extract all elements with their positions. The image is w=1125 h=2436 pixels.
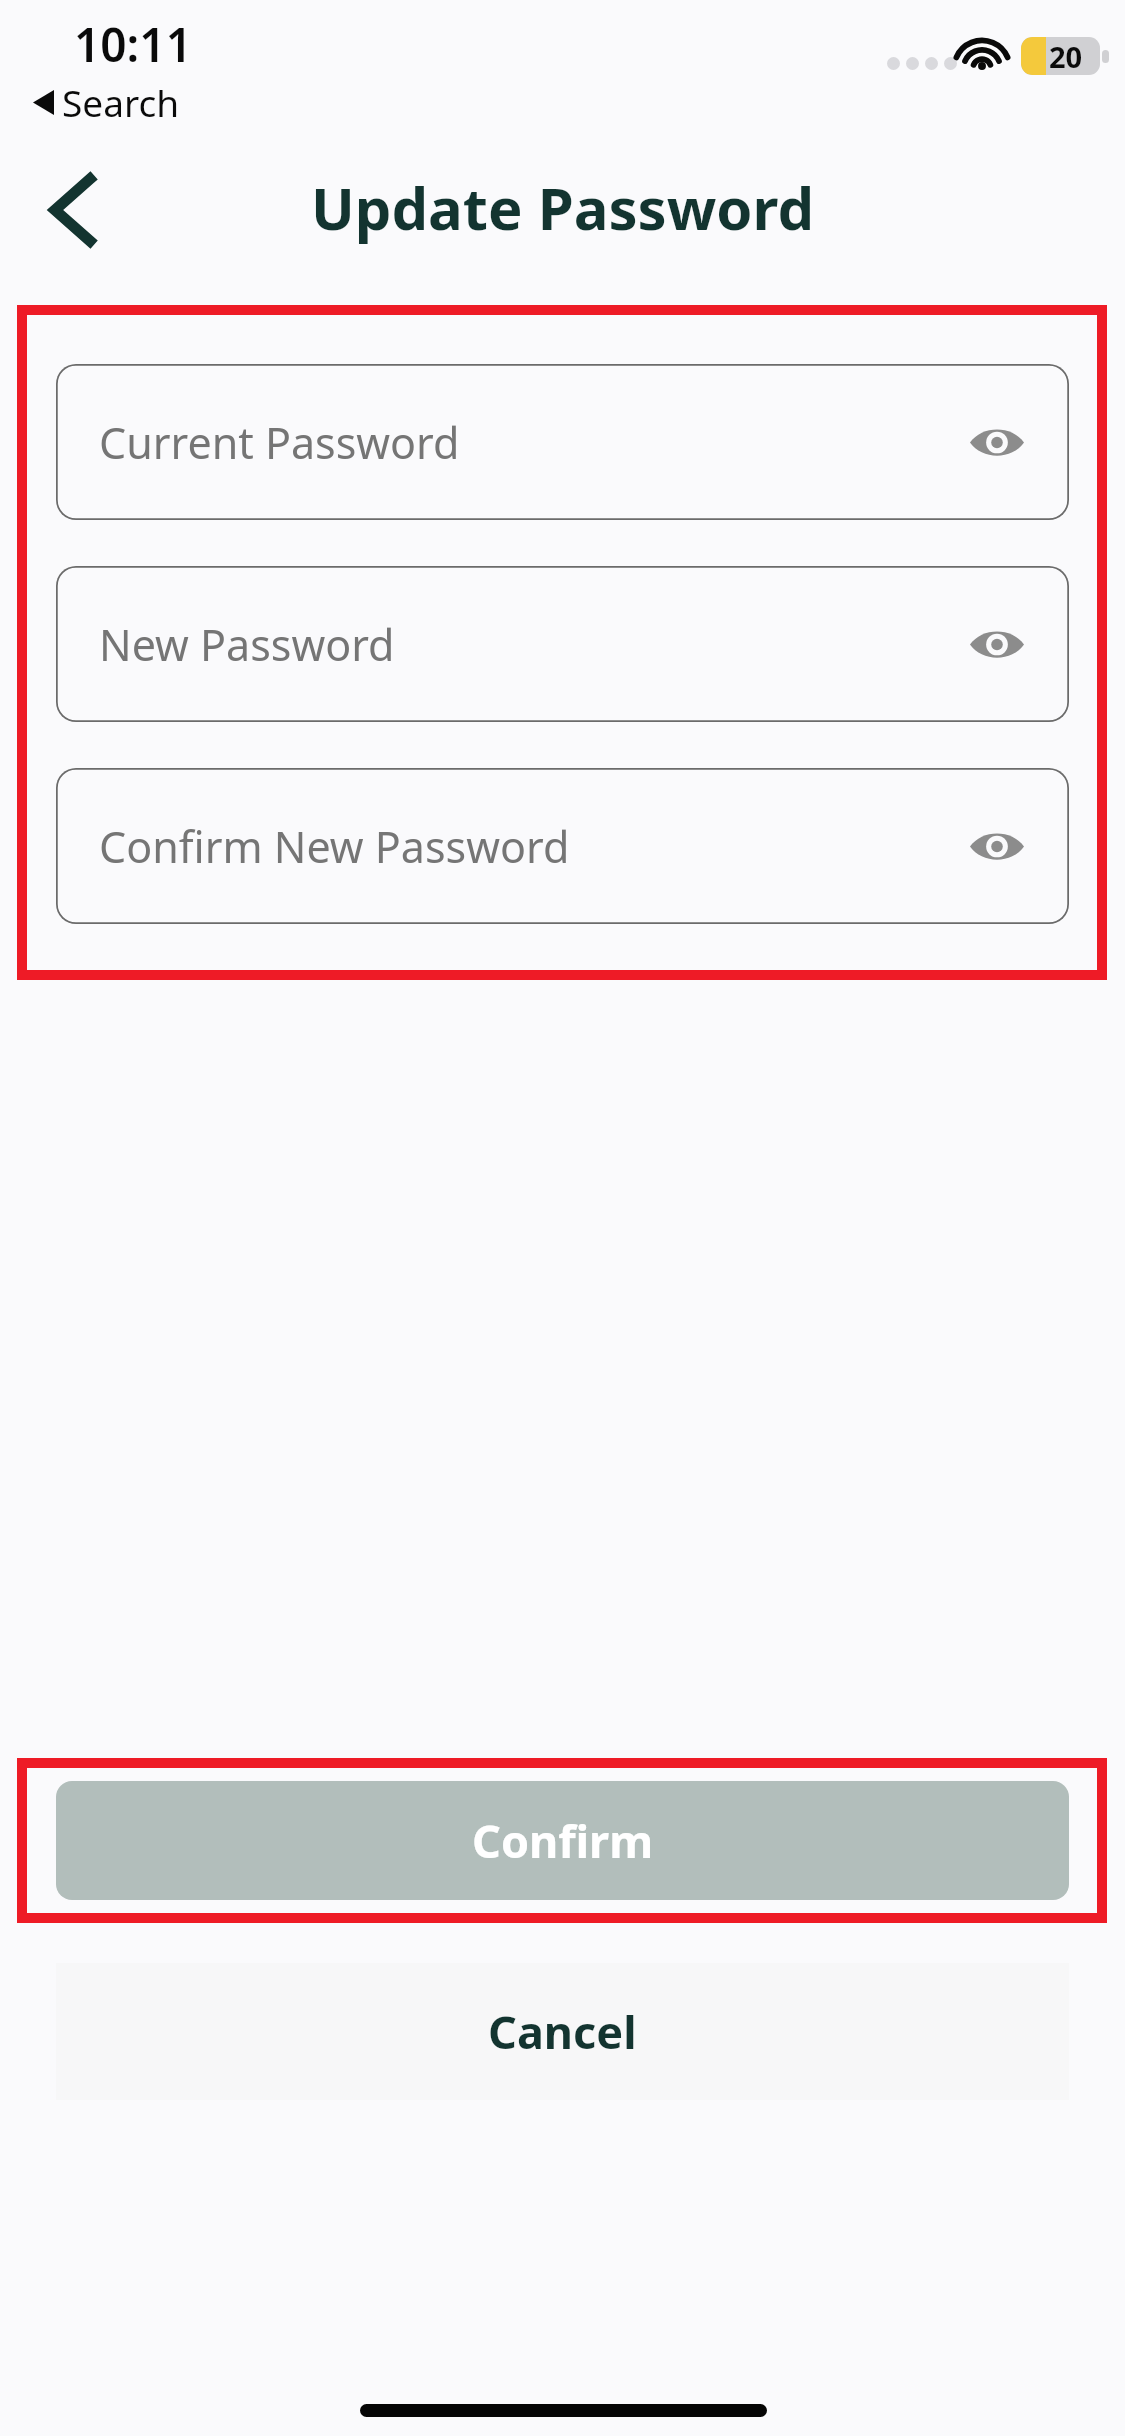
button[interactable]: Show password [953, 600, 1041, 688]
button[interactable]: Current Password [56, 364, 1069, 520]
button[interactable]: New Password [56, 566, 1069, 722]
button[interactable]: Show password [953, 802, 1041, 890]
staticText: New Password [99, 615, 395, 674]
staticText: Confirm [472, 1810, 654, 1871]
button[interactable]: Confirm [56, 1781, 1069, 1900]
button[interactable]: Search [33, 77, 180, 127]
staticText: Update Password [0, 168, 1125, 247]
staticText: Search [62, 77, 180, 127]
staticText: Cancel [488, 2001, 637, 2062]
button[interactable]: Confirm New Password [56, 768, 1069, 924]
button[interactable]: Cancel [56, 1963, 1069, 2100]
button[interactable]: Show password [953, 398, 1041, 486]
staticText: Confirm New Password [99, 817, 570, 876]
staticText: 10:11 [74, 13, 192, 76]
staticText: 20 [1049, 37, 1083, 75]
staticText: Current Password [99, 413, 460, 472]
button[interactable]: Back [18, 158, 126, 262]
